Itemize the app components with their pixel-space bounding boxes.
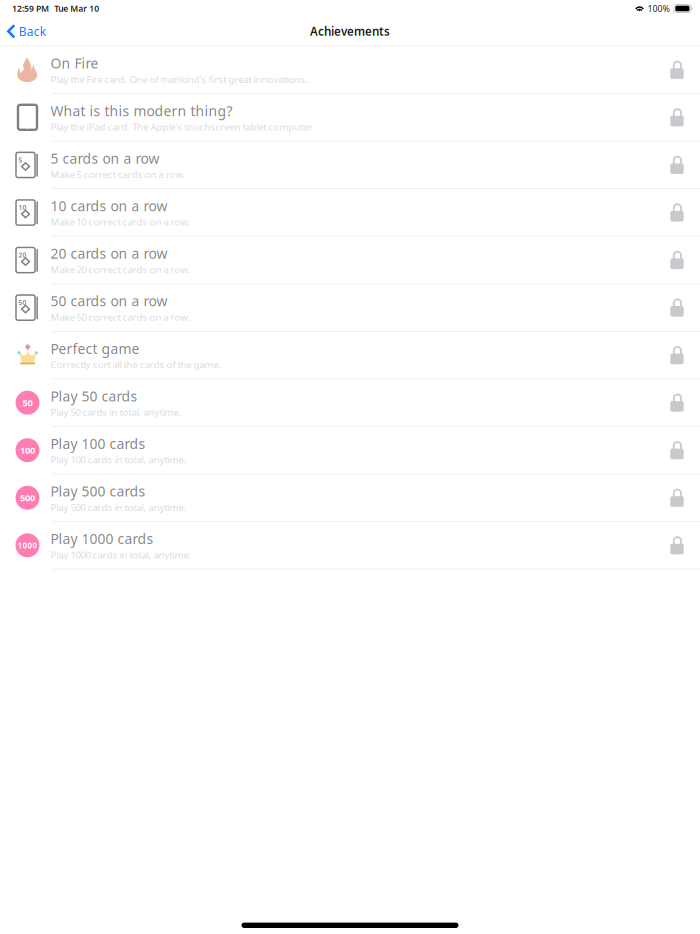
button[interactable]: Back: [0, 18, 46, 44]
staticText: Play the Fire card. One of mankind's fir…: [50, 73, 308, 86]
staticText: Play 1000 cards in total, anytime.: [50, 548, 191, 561]
staticText: 20 cards on a row: [50, 244, 167, 263]
button[interactable]: 1000: [0, 522, 700, 569]
staticText: 5 cards on a row: [50, 149, 159, 168]
button[interactable]: 100: [0, 427, 700, 474]
staticText: Make 10 correct cards on a row.: [50, 215, 190, 228]
button[interactable]: 5: [0, 142, 700, 189]
staticText: Correctly sort all the cards of the game…: [50, 358, 221, 371]
staticText: 100: [20, 444, 35, 456]
staticText: Play 1000 cards: [50, 529, 153, 548]
staticText: Play 500 cards: [50, 482, 145, 501]
staticText: Play 100 cards in total, anytime.: [50, 453, 186, 466]
staticText: 50 cards on a row: [50, 291, 167, 310]
staticText: Play 100 cards: [50, 434, 145, 453]
staticText: 500: [20, 491, 35, 504]
staticText: 50: [19, 298, 27, 307]
staticText: Make 50 correct cards on a row.: [50, 310, 190, 323]
button[interactable]: 50: [0, 284, 700, 332]
staticText: Back: [19, 23, 46, 39]
staticText: Achievements: [310, 23, 390, 39]
staticText: Make 20 correct cards on a row.: [50, 263, 190, 276]
staticText: Play 50 cards: [50, 387, 137, 405]
staticText: 10: [19, 203, 27, 212]
button[interactable]: 500: [0, 474, 700, 522]
staticText: Play 50 cards in total, anytime.: [50, 405, 181, 419]
staticText: 5: [19, 155, 23, 164]
button[interactable]: What is this modern thing?: [0, 94, 700, 141]
staticText: On Fire: [50, 54, 98, 73]
staticText: 10 cards on a row: [50, 196, 167, 215]
staticText: Make 5 correct cards on a row.: [50, 168, 185, 181]
staticText: Play the iPad card. The Apple's touchscr…: [50, 120, 313, 133]
button[interactable]: 50: [0, 379, 700, 427]
staticText: 100%: [647, 2, 669, 14]
staticText: 20: [19, 250, 27, 259]
button[interactable]: On Fire: [0, 46, 700, 94]
button[interactable]: 10: [0, 189, 700, 237]
staticText: 1000: [17, 540, 37, 551]
staticText: 50: [22, 396, 32, 409]
button[interactable]: Perfect game: [0, 332, 700, 379]
staticText: What is this modern thing?: [50, 101, 232, 120]
staticText: Perfect game: [50, 339, 139, 358]
staticText: Play 500 cards in total, anytime.: [50, 501, 186, 514]
staticText: Tue Mar 10: [54, 3, 99, 14]
staticText: 12:59 PM: [12, 3, 49, 14]
button[interactable]: 20: [0, 237, 700, 284]
